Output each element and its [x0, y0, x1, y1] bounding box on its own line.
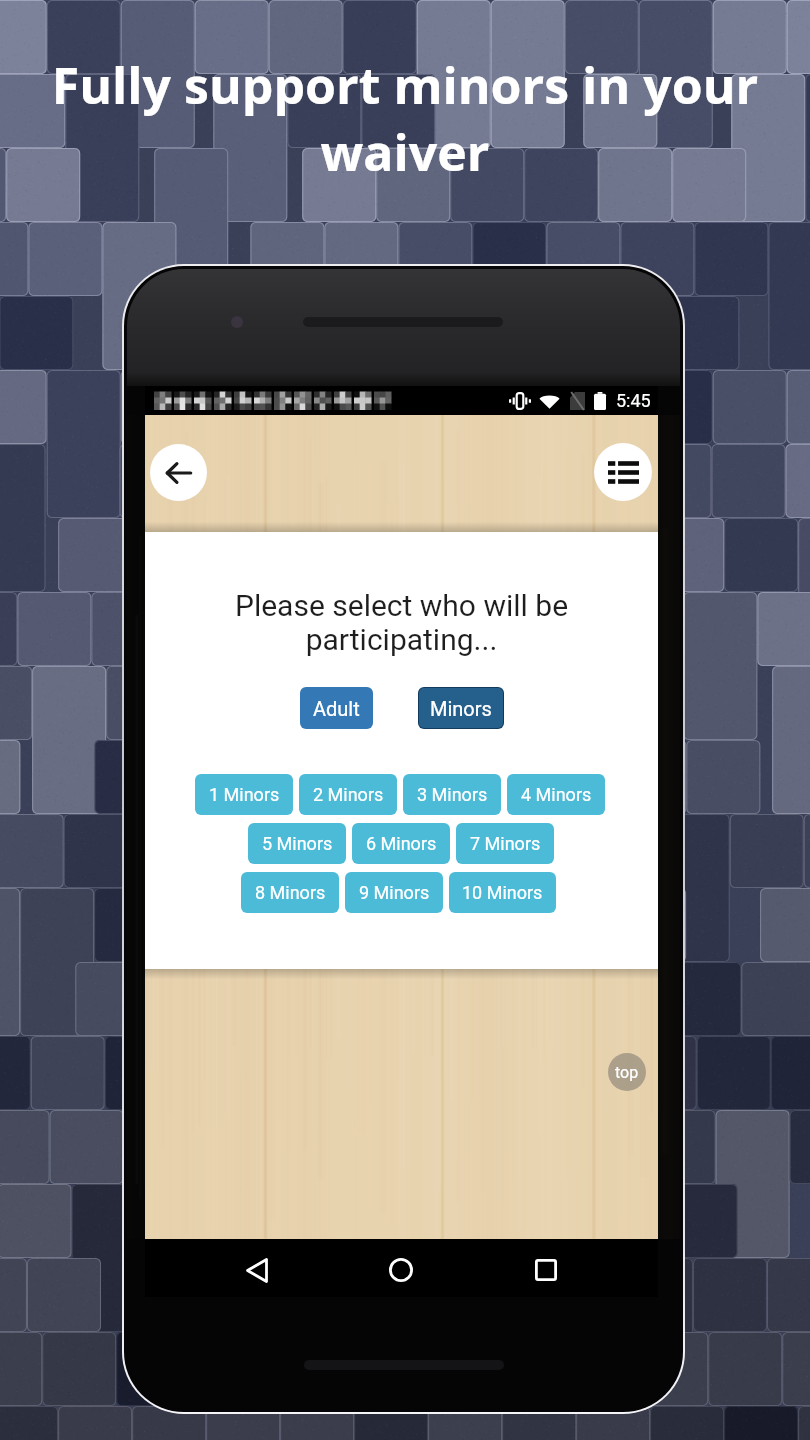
button[interactable]: 6 Minors [352, 823, 450, 864]
staticText: 6 Minors [366, 833, 437, 854]
staticText: 8 Minors [255, 882, 326, 903]
button[interactable]: Back [150, 444, 207, 501]
staticText: 5 Minors [262, 833, 333, 854]
staticText: 9 Minors [359, 882, 430, 903]
staticText: 7 Minors [470, 833, 541, 854]
button[interactable]: Minors [418, 687, 504, 729]
button[interactable]: Menu [594, 443, 652, 501]
button[interactable]: 4 Minors [507, 774, 605, 815]
staticText: 4 Minors [521, 784, 592, 805]
staticText: 3 Minors [417, 784, 488, 805]
staticText: Minors [430, 697, 492, 720]
button[interactable]: 7 Minors [456, 823, 554, 864]
staticText: Adult [313, 697, 360, 720]
button[interactable]: 3 Minors [403, 774, 501, 815]
button[interactable]: Back [237, 1250, 277, 1290]
staticText: 10 Minors [462, 882, 543, 903]
button[interactable]: Recents [526, 1250, 566, 1290]
staticText: Please select who will be participating.… [225, 588, 578, 657]
staticText: top [615, 1063, 639, 1082]
button[interactable]: 10 Minors [449, 872, 556, 913]
button[interactable]: Adult [300, 687, 373, 729]
button[interactable]: 5 Minors [248, 823, 346, 864]
button[interactable]: Scroll to top [608, 1053, 646, 1091]
staticText: Fully support minors in your waiver [22, 51, 788, 185]
staticText: 1 Minors [209, 784, 280, 805]
button[interactable]: 9 Minors [345, 872, 443, 913]
staticText: 5:45 [616, 390, 651, 411]
button[interactable]: Home [381, 1250, 421, 1290]
staticText: 2 Minors [313, 784, 384, 805]
button[interactable]: 8 Minors [241, 872, 339, 913]
button[interactable]: 1 Minors [195, 774, 293, 815]
button[interactable]: 2 Minors [299, 774, 397, 815]
